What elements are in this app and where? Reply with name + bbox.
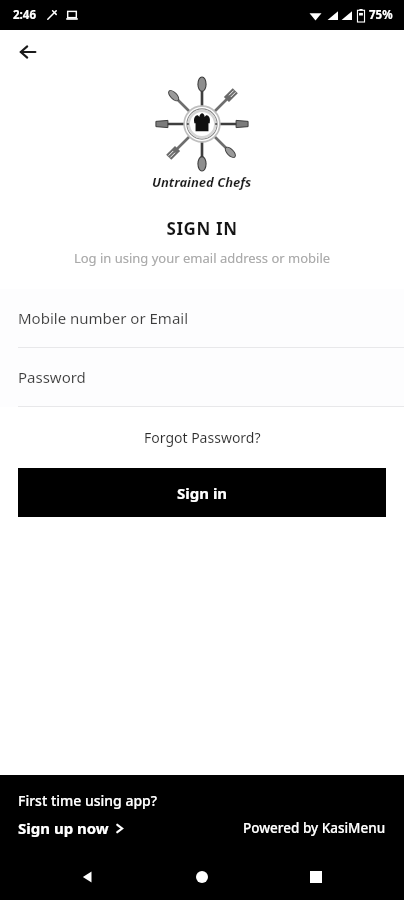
button[interactable]: Home	[176, 854, 228, 900]
button[interactable]: Back	[62, 854, 114, 900]
button[interactable]: Sign in	[18, 468, 386, 517]
staticText: 75%	[369, 7, 393, 23]
button[interactable]: Recent apps	[290, 854, 342, 900]
staticText: Log in using your email address or mobil…	[0, 249, 404, 267]
button[interactable]: Sign up now	[18, 818, 125, 838]
button[interactable]: Mobile number or Email	[0, 289, 404, 347]
staticText: Password	[18, 367, 86, 387]
staticText: Sign in	[177, 483, 228, 503]
staticText: 2:46	[13, 7, 36, 23]
staticText: Untrained Chefs	[152, 173, 252, 191]
staticText: Sign up now	[18, 818, 109, 838]
staticText: SIGN IN	[0, 217, 404, 240]
staticText: Mobile number or Email	[18, 308, 189, 328]
staticText: Powered by KasiMenu	[243, 819, 386, 837]
staticText: First time using app?	[18, 791, 158, 810]
staticText: Forgot Password?	[144, 428, 261, 447]
button[interactable]: Forgot Password?	[132, 424, 273, 451]
button[interactable]: Password	[0, 348, 404, 406]
button[interactable]: Back	[0, 30, 56, 74]
